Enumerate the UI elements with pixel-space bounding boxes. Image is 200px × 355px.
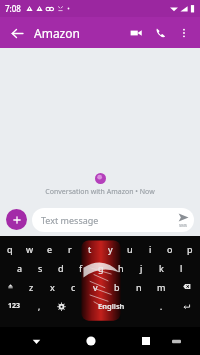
staticText: t: [88, 243, 92, 255]
staticText: r: [68, 243, 72, 255]
staticText: w: [26, 243, 34, 255]
button[interactable]: o: [160, 239, 180, 258]
button[interactable]: b: [106, 277, 128, 296]
staticText: Amazon: [34, 25, 80, 41]
button[interactable]: z: [21, 277, 42, 296]
button[interactable]: p: [180, 239, 200, 258]
button[interactable]: c: [63, 277, 84, 296]
button[interactable]: Enter: [172, 296, 200, 316]
staticText: n: [136, 281, 142, 293]
staticText: b: [114, 281, 120, 293]
button[interactable]: f: [71, 258, 91, 277]
button[interactable]: l: [171, 258, 191, 277]
button[interactable]: h: [111, 258, 131, 277]
button[interactable]: a: [9, 258, 30, 277]
staticText: y: [108, 243, 113, 255]
staticText: f: [79, 262, 83, 274]
button[interactable]: t: [80, 239, 100, 258]
button[interactable]: y: [100, 239, 120, 258]
staticText: k: [159, 262, 164, 274]
staticText: English: [98, 301, 125, 311]
staticText: a: [17, 262, 23, 274]
staticText: Text message: [41, 214, 99, 226]
button[interactable]: w: [20, 239, 40, 258]
staticText: d: [58, 262, 64, 274]
button[interactable]: Call: [150, 22, 172, 44]
button[interactable]: Attach: [6, 209, 27, 230]
staticText: q: [7, 243, 13, 255]
button[interactable]: Home: [80, 330, 102, 352]
staticText: l: [180, 262, 183, 274]
button[interactable]: Send SMS: [178, 212, 189, 228]
button[interactable]: Switch keyboard: [166, 331, 186, 351]
button[interactable]: s: [30, 258, 51, 277]
staticText: 7:08: [5, 3, 21, 14]
staticText: g: [98, 262, 104, 274]
staticText: m: [157, 281, 166, 293]
button[interactable]: 123: [0, 296, 28, 316]
button[interactable]: ,: [28, 296, 50, 316]
button[interactable]: Video call: [125, 22, 147, 44]
staticText: e: [47, 243, 53, 255]
button[interactable]: English: [72, 296, 150, 316]
button[interactable]: e: [40, 239, 60, 258]
staticText: v: [93, 281, 98, 293]
button[interactable]: g: [91, 258, 111, 277]
staticText: z: [29, 281, 34, 293]
button[interactable]: Back: [6, 22, 28, 44]
staticText: h: [118, 262, 124, 274]
button[interactable]: Recent apps: [136, 331, 156, 351]
button[interactable]: Hide keyboard: [26, 331, 46, 351]
button[interactable]: Backspace: [172, 277, 200, 296]
button[interactable]: v: [84, 277, 106, 296]
staticText: p: [187, 243, 193, 255]
button[interactable]: .: [150, 296, 172, 316]
staticText: u: [127, 243, 133, 255]
button[interactable]: Text message: [32, 208, 194, 232]
staticText: j: [140, 262, 143, 274]
staticText: Conversation with Amazon • Now: [45, 187, 155, 197]
staticText: ,: [38, 301, 41, 312]
button[interactable]: x: [42, 277, 63, 296]
button[interactable]: k: [151, 258, 171, 277]
staticText: c: [71, 281, 76, 293]
button[interactable]: u: [120, 239, 140, 258]
button[interactable]: i: [140, 239, 160, 258]
button[interactable]: m: [150, 277, 172, 296]
staticText: .: [160, 301, 163, 312]
button[interactable]: Shift: [0, 277, 21, 296]
button[interactable]: q: [0, 239, 20, 258]
button[interactable]: Keyboard settings: [50, 296, 72, 316]
button[interactable]: r: [60, 239, 80, 258]
button[interactable]: n: [128, 277, 150, 296]
staticText: o: [167, 243, 173, 255]
staticText: i: [149, 243, 152, 255]
button[interactable]: More options: [174, 23, 194, 43]
staticText: x: [50, 281, 55, 293]
staticText: SMS: [179, 223, 188, 228]
button[interactable]: d: [51, 258, 71, 277]
staticText: 123: [8, 301, 21, 311]
staticText: s: [38, 262, 43, 274]
button[interactable]: j: [131, 258, 151, 277]
